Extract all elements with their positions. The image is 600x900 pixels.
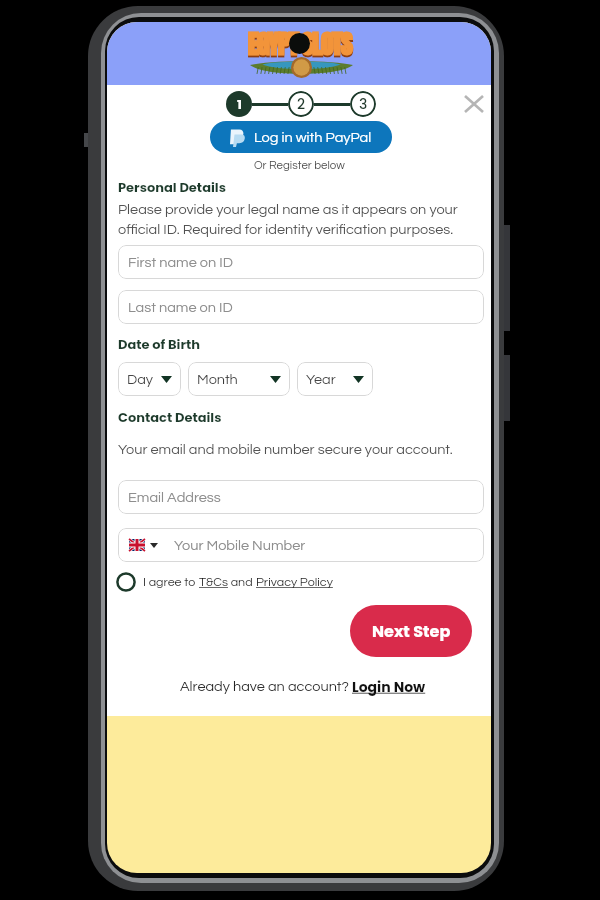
staticText: Month [197,372,238,387]
staticText: 1 [237,95,242,113]
staticText: Your email and mobile number secure your… [118,442,453,457]
button[interactable]: 1 [226,91,252,117]
button[interactable]: 2 [288,91,314,117]
button[interactable]: Next Step [350,605,472,657]
button[interactable]: First name on ID [118,245,484,279]
button[interactable]: Log in with PayPal [210,121,392,153]
button[interactable]: I agree to [116,572,333,592]
button[interactable]: 3 [350,91,376,117]
staticText: Date of Birth [118,335,201,353]
staticText: Last name on ID [128,300,233,315]
staticText: Already have an account? [180,679,352,694]
staticText: 2 [297,94,306,114]
staticText: Next Step [372,620,451,642]
staticText: and [228,576,256,589]
staticText: First name on ID [128,255,233,270]
staticText: Login Now [352,677,426,697]
button[interactable]: Year [297,362,373,396]
staticText: Email Address [128,490,221,505]
button[interactable]: Your Mobile Number [118,528,484,562]
staticText: Year [306,372,336,387]
staticText: Log in with PayPal [254,130,372,145]
button[interactable]: Last name on ID [118,290,484,324]
button[interactable]: Close [457,87,491,121]
staticText: 3 [359,94,368,114]
staticText: I agree to [143,576,199,589]
staticText: T&Cs [199,576,228,589]
button[interactable]: Email Address [118,480,484,514]
button[interactable]: Day [118,362,181,396]
button[interactable]: Month [188,362,290,396]
staticText: Or Register below [254,160,345,172]
staticText: Please provide your legal name as it app… [118,202,470,237]
staticText: Privacy Policy [256,576,333,589]
staticText: EGYPT SLOTS [247,26,351,65]
staticText: Day [127,372,154,387]
staticText: Contact Details [118,408,222,426]
staticText: Your Mobile Number [174,538,306,553]
staticText: EGYPT SLOTS [247,24,351,63]
staticText: Personal Details [118,178,226,196]
